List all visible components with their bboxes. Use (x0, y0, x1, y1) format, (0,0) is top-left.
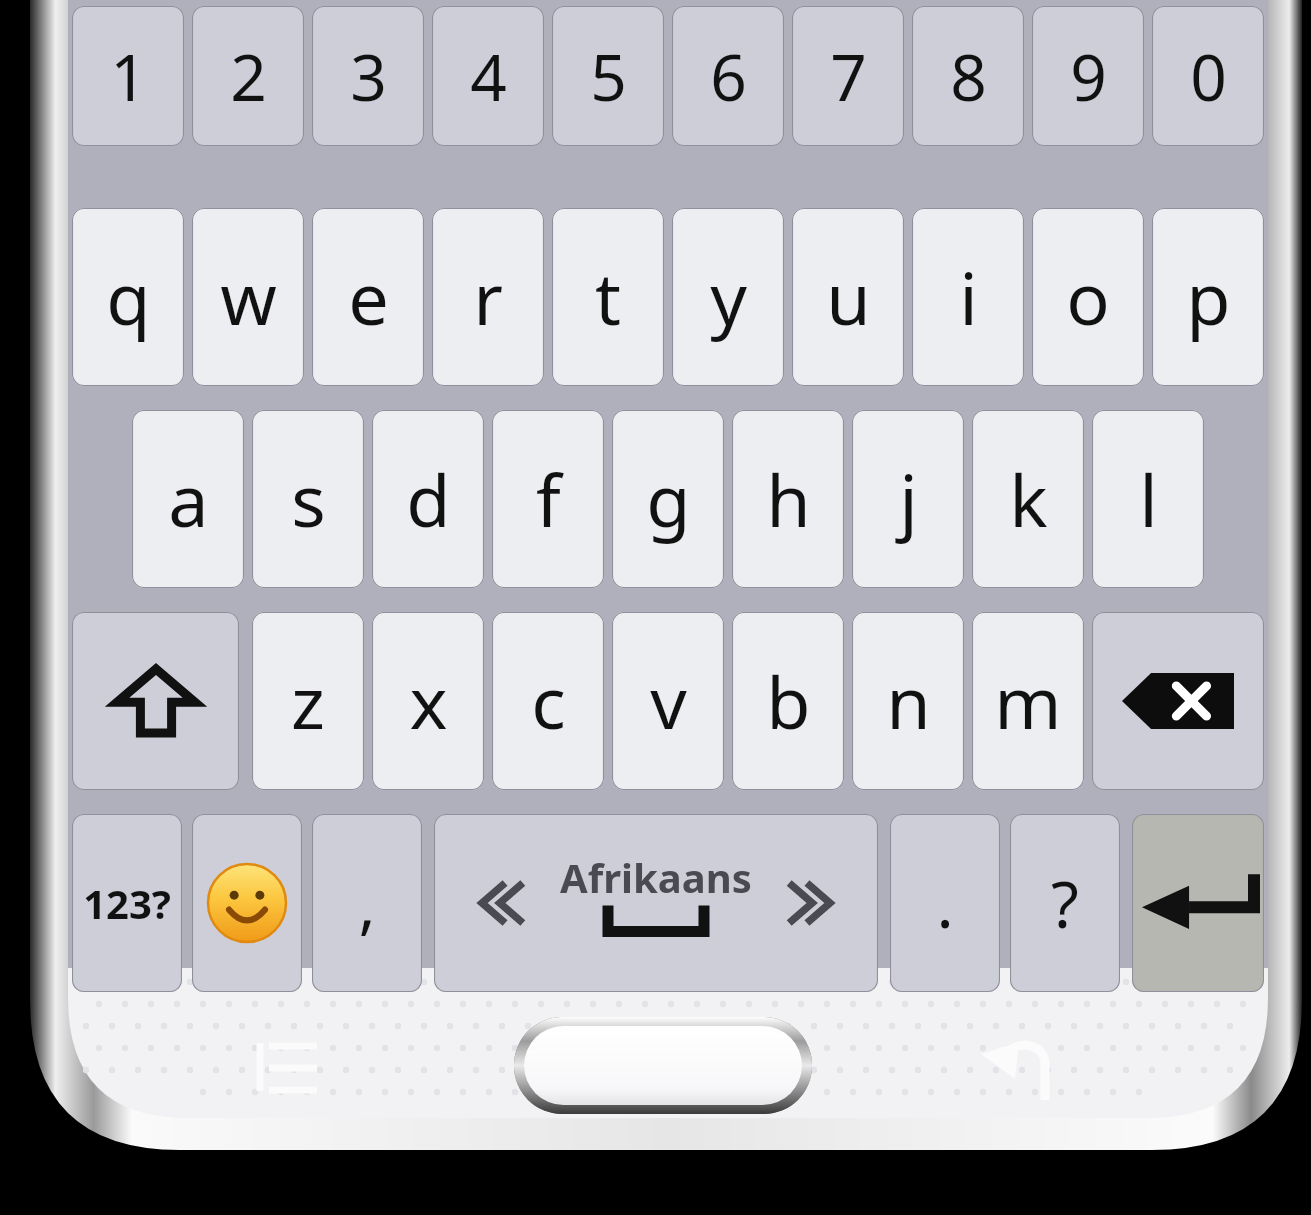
button[interactable]: i (912, 208, 1024, 386)
staticText: 3 (350, 33, 387, 120)
staticText: 6 (710, 33, 747, 120)
button[interactable]: 3 (312, 6, 424, 146)
staticText: 4 (470, 33, 507, 120)
button[interactable]: s (252, 410, 364, 588)
button[interactable]: c (492, 612, 604, 790)
staticText: r (473, 248, 503, 346)
button[interactable]: e (312, 208, 424, 386)
button[interactable]: q (72, 208, 184, 386)
button[interactable]: p (1152, 208, 1264, 386)
staticText: z (291, 652, 325, 750)
button[interactable]: z (252, 612, 364, 790)
button[interactable]: ? (1010, 814, 1120, 992)
staticText: t (595, 248, 621, 346)
staticText: 5 (590, 33, 627, 120)
staticText: s (291, 450, 326, 548)
button[interactable]: Backspace (1092, 612, 1264, 790)
button[interactable]: . (890, 814, 1000, 992)
staticText: b (766, 652, 811, 750)
staticText: 2 (230, 33, 267, 120)
staticText: Afrikaans (560, 850, 752, 904)
staticText: 123? (83, 876, 171, 930)
button[interactable]: v (612, 612, 724, 790)
button[interactable]: , (312, 814, 422, 992)
staticText: x (409, 652, 448, 750)
button[interactable]: Afrikaans (434, 814, 878, 992)
button[interactable]: 9 (1032, 6, 1144, 146)
button[interactable]: g (612, 410, 724, 588)
button[interactable]: 8 (912, 6, 1024, 146)
button[interactable]: j (852, 410, 964, 588)
staticText: , (358, 860, 376, 947)
button[interactable]: 4 (432, 6, 544, 146)
button[interactable]: n (852, 612, 964, 790)
button[interactable]: h (732, 410, 844, 588)
staticText: v (650, 652, 687, 750)
button[interactable]: l (1092, 410, 1204, 588)
button[interactable]: 2 (192, 6, 304, 146)
staticText: 0 (1190, 33, 1227, 120)
button[interactable]: k (972, 410, 1084, 588)
staticText: f (536, 450, 561, 548)
staticText: e (348, 248, 389, 346)
staticText: 9 (1070, 33, 1107, 120)
staticText: y (710, 248, 747, 346)
button[interactable]: 0 (1152, 6, 1264, 146)
button[interactable]: 7 (792, 6, 904, 146)
staticText: . (936, 860, 954, 947)
button[interactable]: m (972, 612, 1084, 790)
staticText: 8 (950, 33, 987, 120)
staticText: ? (1051, 860, 1079, 947)
staticText: q (106, 248, 151, 346)
button[interactable]: Emoji (192, 814, 302, 992)
staticText: l (1139, 450, 1158, 548)
staticText: j (899, 450, 918, 548)
staticText: k (1009, 450, 1048, 548)
staticText: p (1186, 248, 1231, 346)
staticText: i (959, 248, 978, 346)
staticText: n (886, 652, 931, 750)
button[interactable]: Back (975, 1034, 1051, 1106)
button[interactable]: x (372, 612, 484, 790)
button[interactable]: Enter (1132, 814, 1264, 992)
button[interactable]: 123? (72, 814, 182, 992)
staticText: d (406, 450, 451, 548)
button[interactable]: r (432, 208, 544, 386)
button[interactable]: Menu (255, 1035, 321, 1103)
staticText: a (168, 450, 209, 548)
staticText: h (766, 450, 811, 548)
button[interactable]: 5 (552, 6, 664, 146)
button[interactable]: f (492, 410, 604, 588)
button[interactable]: o (1032, 208, 1144, 386)
staticText: w (220, 248, 277, 346)
staticText: 1 (110, 33, 147, 120)
button[interactable]: d (372, 410, 484, 588)
staticText: o (1066, 248, 1110, 346)
button[interactable]: 6 (672, 6, 784, 146)
staticText: u (826, 248, 871, 346)
button[interactable]: 1 (72, 6, 184, 146)
button[interactable]: y (672, 208, 784, 386)
button[interactable]: t (552, 208, 664, 386)
staticText: 7 (830, 33, 867, 120)
staticText: g (646, 450, 691, 548)
button[interactable]: a (132, 410, 244, 588)
button[interactable]: u (792, 208, 904, 386)
button[interactable]: Shift (72, 612, 239, 790)
button[interactable]: w (192, 208, 304, 386)
staticText: m (994, 652, 1062, 750)
staticText: c (531, 652, 566, 750)
button[interactable]: b (732, 612, 844, 790)
